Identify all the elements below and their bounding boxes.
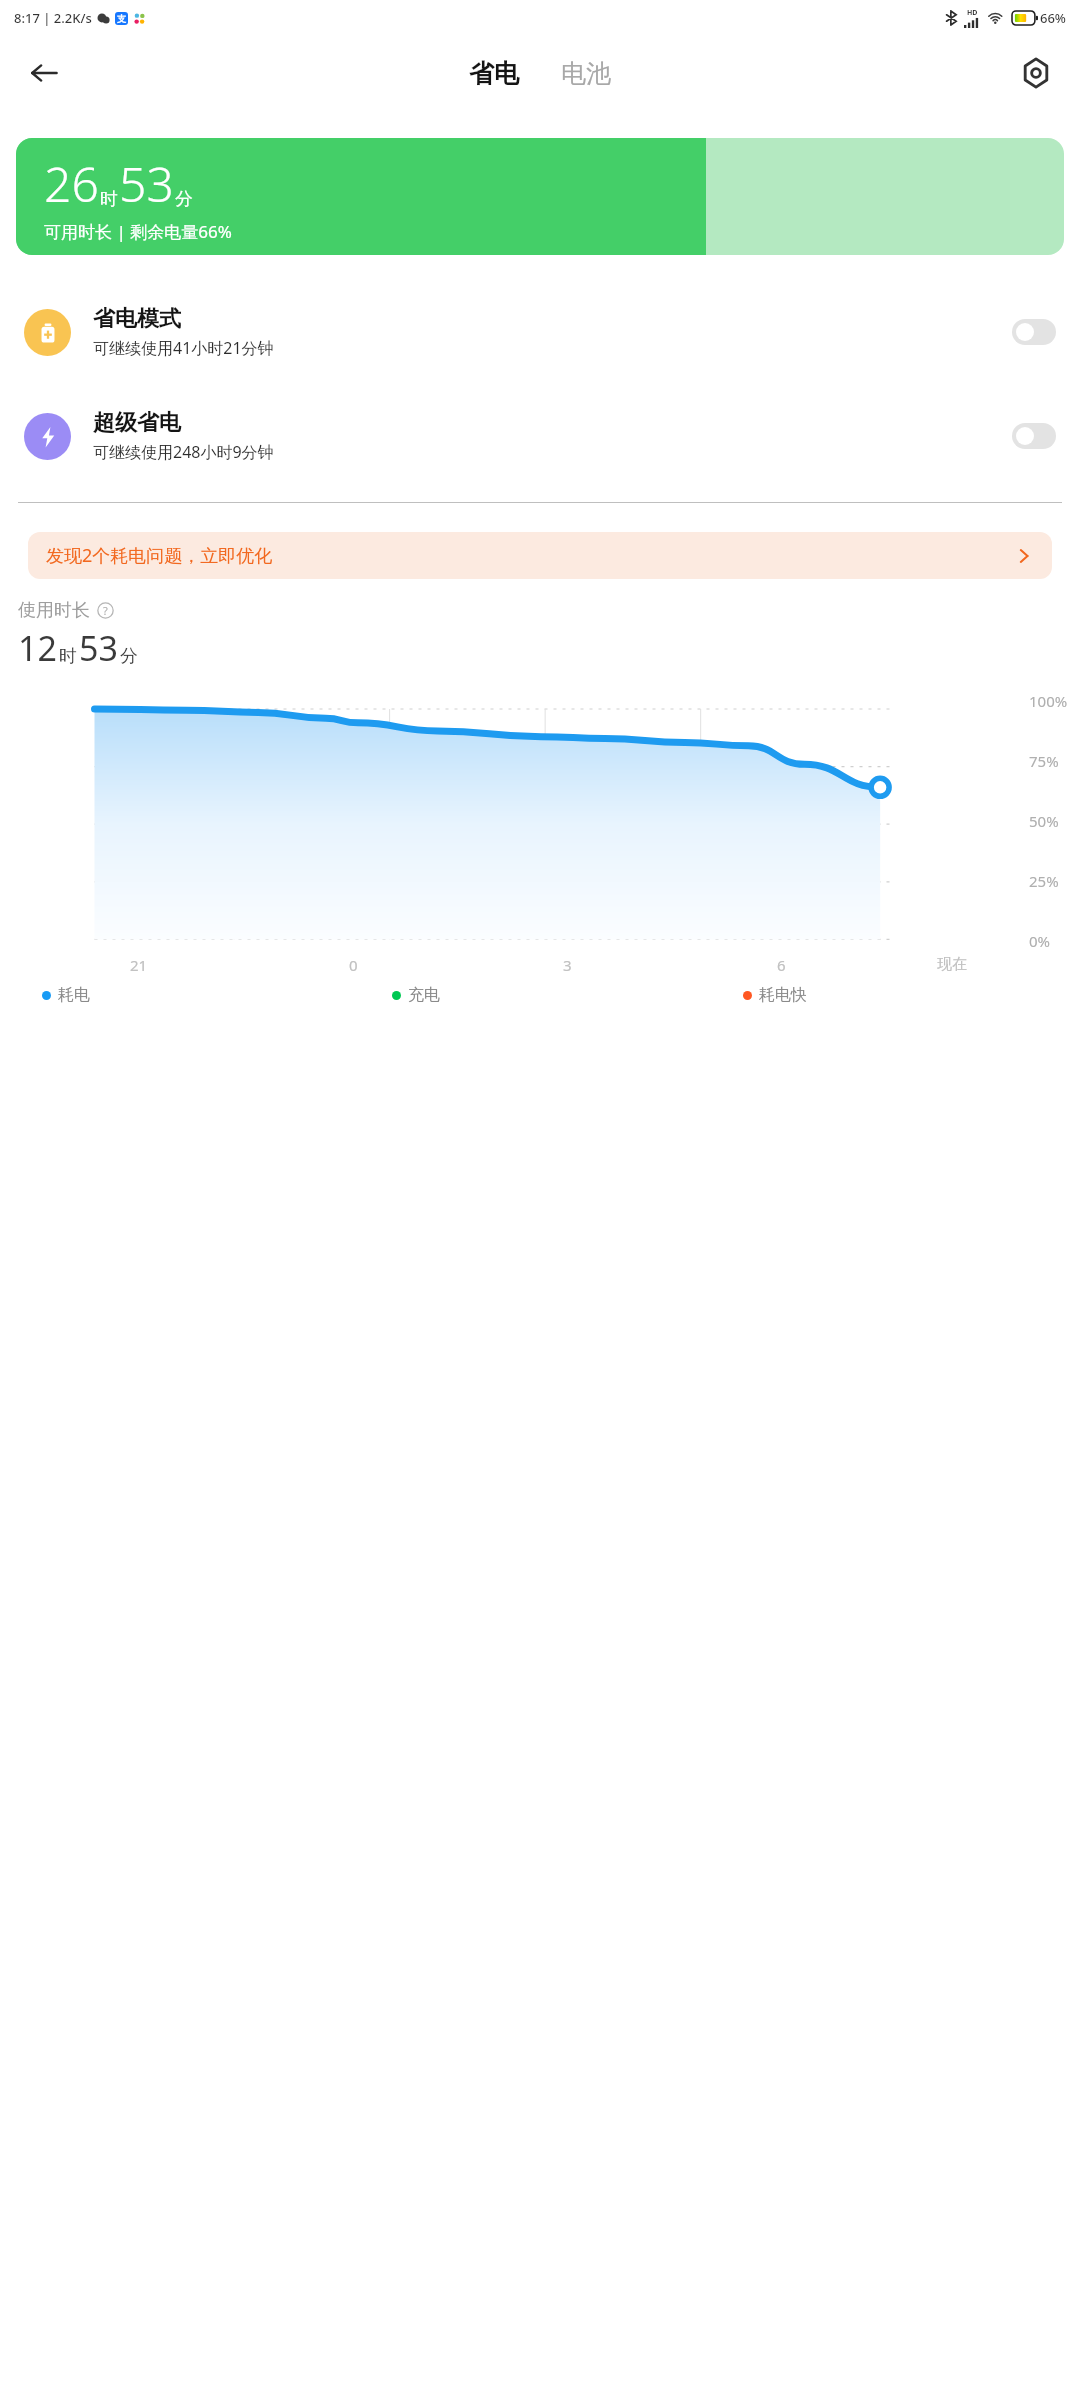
- button[interactable]: 超级省电: [1012, 423, 1056, 449]
- button[interactable]: Back: [18, 47, 70, 99]
- staticText: 0: [349, 955, 358, 975]
- staticText: 8:17 | 2.2K/s: [14, 9, 92, 27]
- staticText: 3: [563, 955, 572, 975]
- staticText: 可继续使用248小时9分钟: [93, 441, 274, 463]
- staticText: 21: [130, 955, 148, 975]
- staticText: 6: [777, 955, 786, 975]
- button[interactable]: Help: [97, 602, 114, 619]
- button[interactable]: 超级省电: [0, 403, 1080, 469]
- staticText: 可用时长 | 剩余电量66%: [44, 220, 232, 243]
- button[interactable]: 26: [16, 138, 1064, 255]
- button[interactable]: 省电: [463, 52, 525, 95]
- staticText: 0%: [1029, 931, 1051, 951]
- staticText: 53: [79, 625, 118, 671]
- button[interactable]: 耗电快: [715, 985, 1066, 1005]
- staticText: 75%: [1029, 751, 1059, 771]
- staticText: 现在: [937, 955, 967, 974]
- staticText: 50%: [1029, 811, 1059, 831]
- staticText: ?: [103, 603, 108, 618]
- staticText: 耗电快: [759, 985, 807, 1005]
- staticText: 时: [59, 645, 77, 668]
- button[interactable]: 充电: [364, 985, 715, 1005]
- staticText: 发现2个耗电问题，立即优化: [46, 543, 273, 568]
- staticText: 12: [18, 625, 57, 671]
- staticText: 充电: [408, 985, 440, 1005]
- button[interactable]: 发现2个耗电问题，立即优化: [28, 532, 1052, 579]
- button[interactable]: 电池: [555, 52, 617, 95]
- staticText: 超级省电: [93, 409, 181, 437]
- staticText: 100%: [1029, 691, 1068, 711]
- staticText: 可继续使用41小时21分钟: [93, 337, 274, 359]
- button[interactable]: 省电模式: [1012, 319, 1056, 345]
- staticText: 省电模式: [93, 305, 181, 333]
- staticText: 电池: [561, 58, 611, 89]
- staticText: 使用时长: [18, 599, 90, 622]
- staticText: 时: [100, 188, 118, 211]
- button[interactable]: Settings: [1010, 47, 1062, 99]
- staticText: 25%: [1029, 871, 1059, 891]
- staticText: 省电: [469, 58, 519, 89]
- staticText: 66%: [1040, 9, 1066, 27]
- staticText: 耗电: [58, 985, 90, 1005]
- button[interactable]: 耗电: [14, 985, 364, 1005]
- staticText: HD: [967, 8, 978, 18]
- staticText: 支: [117, 13, 126, 24]
- staticText: 26: [44, 151, 99, 216]
- staticText: 分: [175, 188, 193, 211]
- staticText: 分: [120, 645, 138, 668]
- button[interactable]: 省电模式: [0, 299, 1080, 365]
- staticText: 53: [119, 151, 174, 216]
